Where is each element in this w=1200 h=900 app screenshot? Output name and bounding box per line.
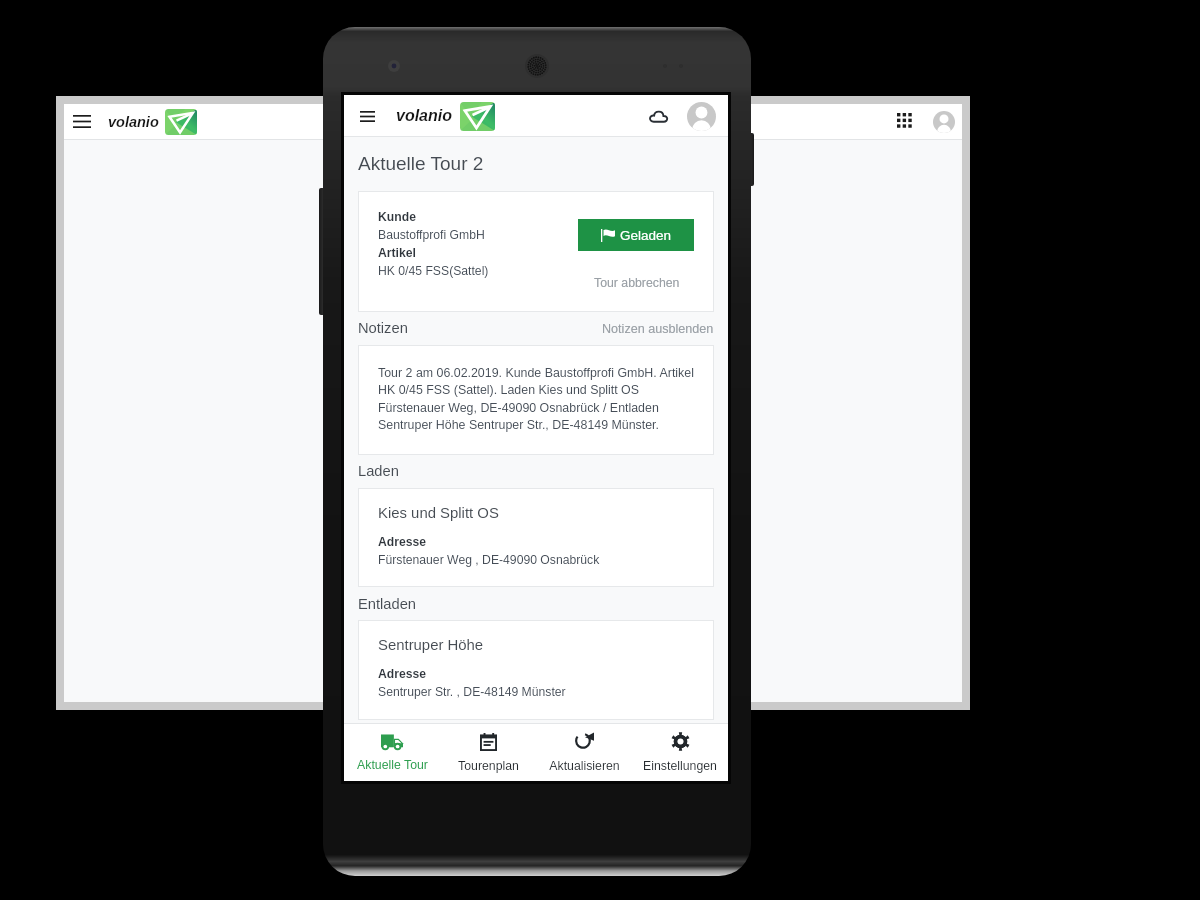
button[interactable]: Einstellungen: [632, 724, 728, 781]
staticText: Artikel: [378, 246, 416, 260]
button[interactable]: Aktualisieren: [536, 724, 632, 781]
staticText: Fürstenauer Weg , DE-49090 Osnabrück: [378, 553, 600, 567]
button[interactable]: Profile: [933, 111, 955, 133]
button[interactable]: Tour abbrechen: [594, 276, 680, 290]
button[interactable]: Sync: [645, 106, 672, 127]
staticText: Kunde: [378, 210, 416, 224]
staticText: Adresse: [378, 535, 427, 549]
staticText: Entladen: [358, 596, 416, 612]
staticText: Baustoffprofi GmbH: [378, 228, 485, 242]
staticText: Tour 2 am 06.02.2019. Kunde Baustoffprof…: [378, 366, 694, 380]
staticText: Aktuelle Tour: [357, 758, 428, 772]
staticText: Sentruper Höhe: [378, 637, 484, 654]
staticText: Adresse: [378, 667, 427, 681]
staticText: Geladen: [620, 228, 672, 243]
staticText: Sentruper Str. , DE-48149 Münster: [378, 685, 566, 699]
staticText: Notizen: [358, 320, 408, 336]
button[interactable]: Apps: [897, 113, 914, 130]
staticText: Laden: [358, 463, 399, 479]
staticText: Einstellungen: [643, 759, 717, 773]
button[interactable]: Aktuelle Tour: [344, 724, 440, 781]
button[interactable]: Profile: [687, 102, 716, 131]
staticText: HK 0/45 FSS(Sattel): [378, 264, 489, 278]
button[interactable]: Menu: [356, 107, 379, 126]
staticText: HK 0/45 FSS (Sattel). Laden Kies und Spl…: [378, 383, 640, 397]
staticText: Tourenplan: [458, 759, 519, 773]
staticText: Aktualisieren: [549, 759, 620, 773]
staticText: volanio: [108, 114, 159, 130]
button[interactable]: Menu: [73, 115, 91, 128]
staticText: volanio: [396, 107, 453, 125]
staticText: Sentruper Höhe Sentruper Str., DE-48149 …: [378, 418, 660, 432]
button[interactable]: Geladen: [578, 219, 694, 251]
staticText: Fürstenauer Weg, DE-49090 Osnabrück / En…: [378, 401, 659, 415]
staticText: Aktuelle Tour 2: [358, 153, 484, 174]
staticText: Kies und Splitt OS: [378, 505, 499, 522]
button[interactable]: Notizen ausblenden: [602, 322, 714, 336]
button[interactable]: Tourenplan: [440, 724, 536, 781]
